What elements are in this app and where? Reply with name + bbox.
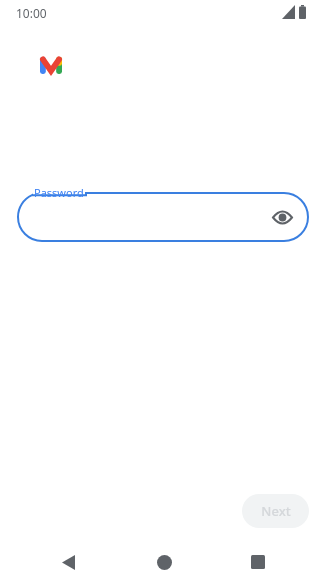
button[interactable]: Recent apps (238, 542, 278, 582)
button[interactable]: Show password (17, 192, 309, 242)
button[interactable]: Back (48, 542, 88, 582)
staticText: Password (34, 185, 84, 200)
button[interactable]: Show password (267, 202, 297, 232)
button[interactable]: Home (144, 542, 184, 582)
button[interactable]: Next (242, 494, 309, 528)
staticText: 10:00 (16, 5, 47, 21)
staticText: Next (261, 502, 291, 520)
